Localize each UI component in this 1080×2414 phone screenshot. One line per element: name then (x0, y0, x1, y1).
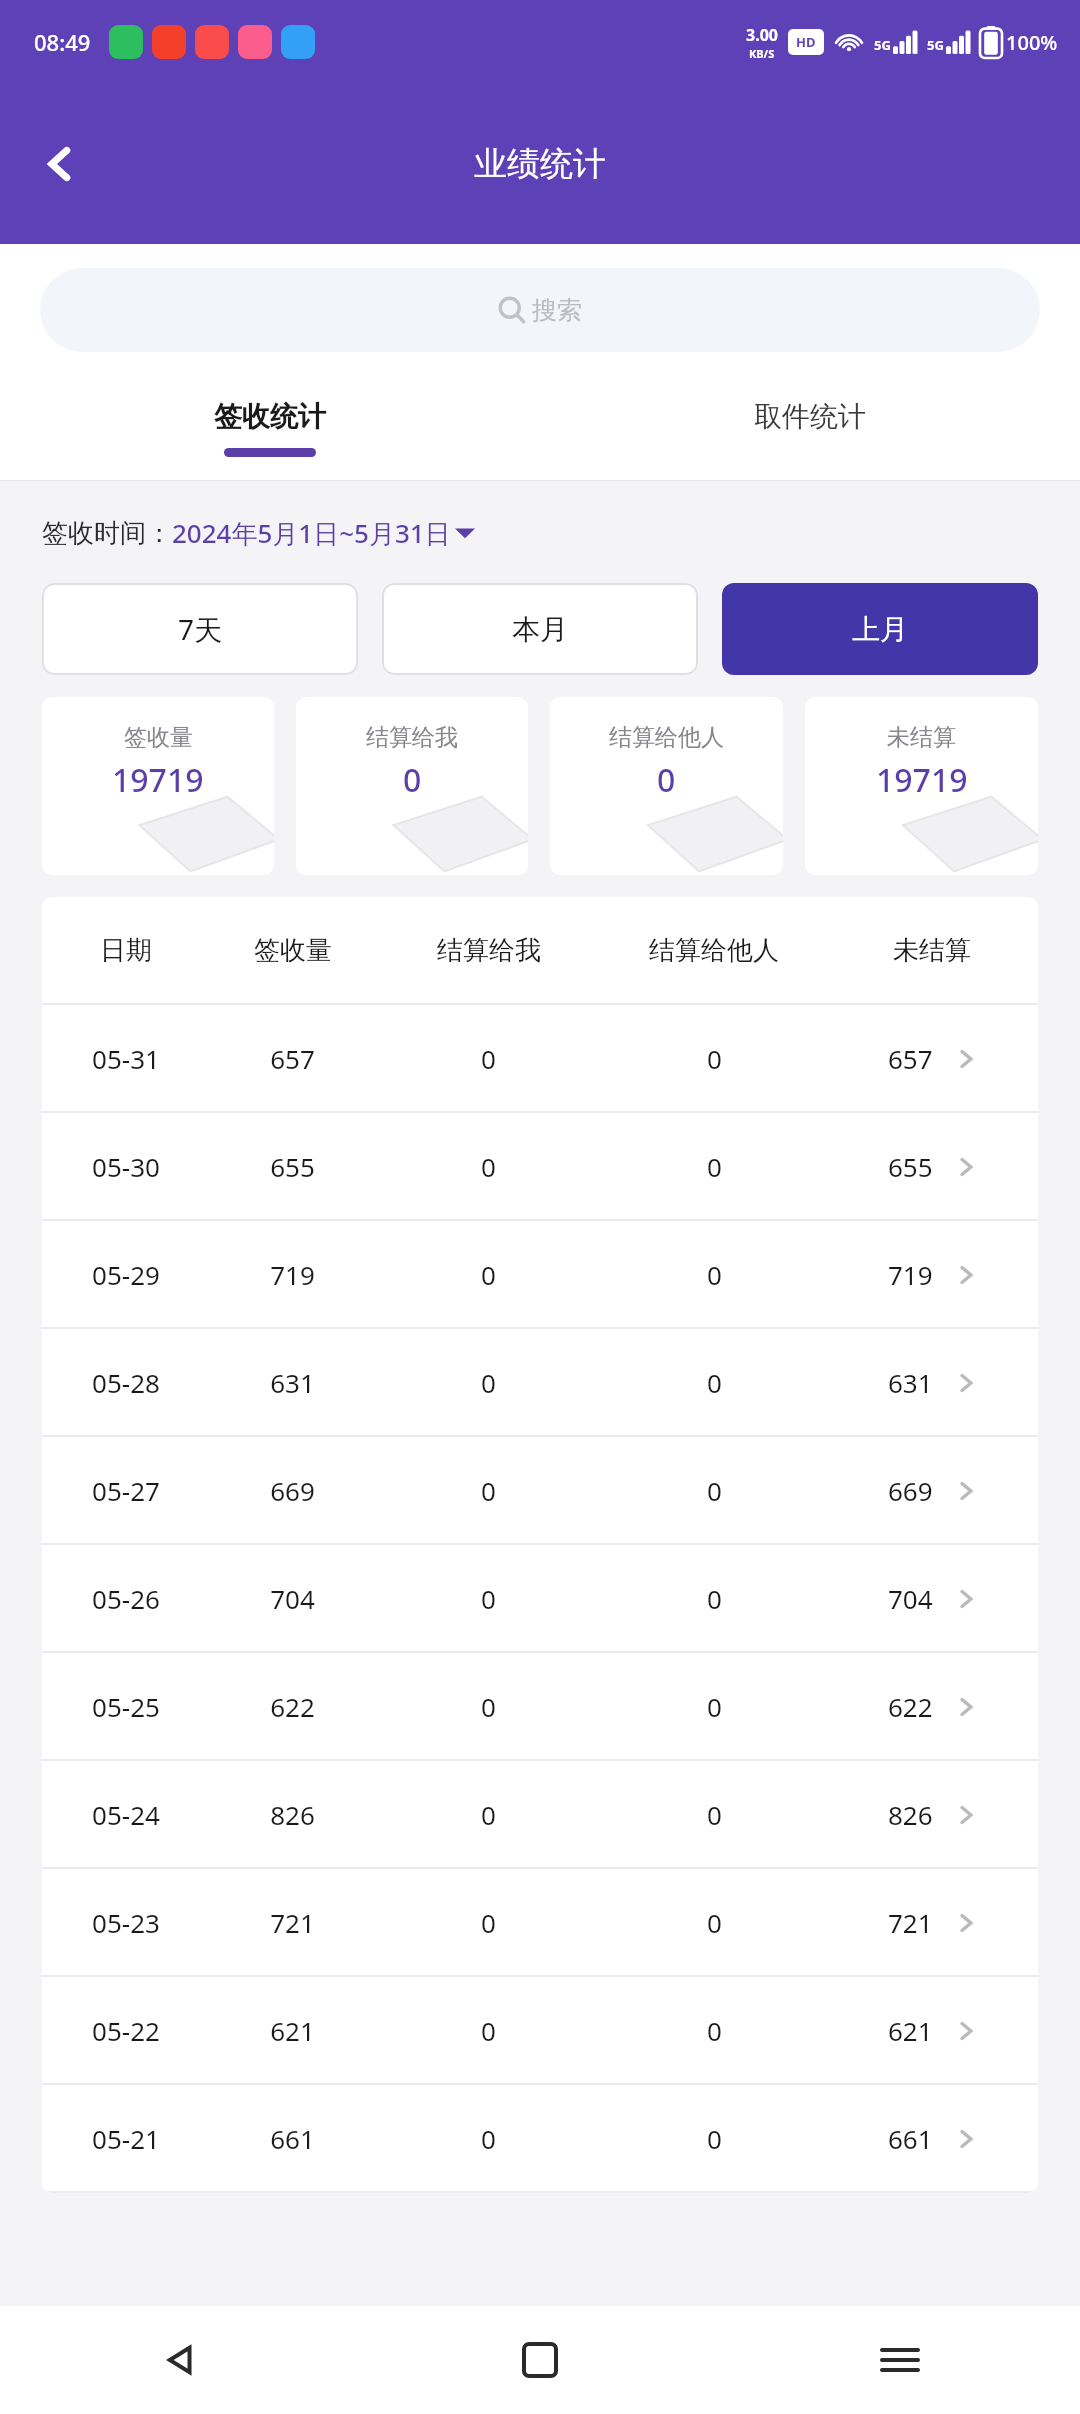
button[interactable]: Home (360, 2306, 720, 2414)
staticText: 本月 (512, 612, 568, 647)
button[interactable]: 未结算 (805, 697, 1038, 875)
staticText: 0 (707, 1581, 722, 1616)
staticText: 05-29 (92, 1257, 160, 1292)
staticText: 657 (270, 1041, 315, 1076)
staticText: KB/S (749, 46, 775, 61)
staticText: 704 (888, 1581, 933, 1616)
staticText: 日期 (100, 934, 152, 967)
staticText: 0 (481, 1473, 496, 1508)
staticText: 上月 (852, 612, 908, 647)
button[interactable]: 取件统计 (540, 376, 1080, 480)
staticText: 签收量 (254, 934, 332, 967)
staticText: 0 (481, 1689, 496, 1724)
staticText: 05-24 (92, 1797, 160, 1832)
staticText: 0 (707, 1041, 722, 1076)
button[interactable]: 05-24 (50, 1761, 1030, 1867)
button[interactable]: 结算给他人 (550, 697, 783, 875)
staticText: 100% (1006, 29, 1058, 56)
staticText: 0 (481, 1905, 496, 1940)
staticText: 0 (481, 1797, 496, 1832)
staticText: 结算给他人 (609, 723, 724, 752)
staticText: 19719 (112, 758, 204, 802)
staticText: 签收统计 (214, 399, 326, 434)
staticText: 3.00 (746, 24, 778, 46)
staticText: 未结算 (893, 934, 971, 967)
staticText: 取件统计 (754, 399, 866, 434)
button[interactable]: 签收时间： (42, 515, 1080, 551)
staticText: 622 (270, 1689, 315, 1724)
staticText: HD (796, 33, 816, 51)
staticText: 0 (481, 1581, 496, 1616)
button[interactable]: 05-30 (50, 1113, 1030, 1219)
staticText: 0 (707, 1365, 722, 1400)
staticText: 719 (888, 1257, 933, 1292)
staticText: 657 (888, 1041, 933, 1076)
staticText: 0 (481, 1149, 496, 1184)
staticText: 655 (270, 1149, 315, 1184)
button[interactable]: 05-25 (50, 1653, 1030, 1759)
button[interactable]: 05-22 (50, 1977, 1030, 2083)
staticText: 05-28 (92, 1365, 160, 1400)
staticText: 05-30 (92, 1149, 160, 1184)
button[interactable]: 05-28 (50, 1329, 1030, 1435)
staticText: 签收量 (124, 723, 193, 752)
button[interactable]: 签收量 (42, 697, 274, 875)
staticText: 0 (481, 2121, 496, 2156)
staticText: 结算给他人 (649, 934, 779, 967)
button[interactable]: 结算给我 (296, 697, 528, 875)
staticText: 719 (270, 1257, 315, 1292)
staticText: 621 (270, 2013, 315, 2048)
button[interactable]: 本月 (382, 583, 698, 675)
button[interactable]: 05-21 (50, 2085, 1030, 2191)
staticText: 669 (270, 1473, 315, 1508)
staticText: 0 (481, 2013, 496, 2048)
staticText: 搜索 (532, 295, 582, 326)
staticText: 7天 (178, 610, 223, 648)
staticText: 655 (888, 1149, 933, 1184)
staticText: 721 (888, 1905, 933, 1940)
staticText: 721 (270, 1905, 315, 1940)
staticText: 669 (888, 1473, 933, 1508)
staticText: 0 (707, 1689, 722, 1724)
staticText: 0 (707, 1149, 722, 1184)
staticText: 05-22 (92, 2013, 160, 2048)
button[interactable]: 上月 (722, 583, 1038, 675)
staticText: 0 (481, 1365, 496, 1400)
staticText: 631 (270, 1365, 315, 1400)
staticText: 结算给我 (366, 723, 458, 752)
staticText: 5G (874, 36, 891, 54)
button[interactable]: 签收统计 (0, 376, 540, 480)
staticText: 2024年5月1日~5月31日 (172, 515, 451, 551)
button[interactable]: 05-31 (50, 1005, 1030, 1111)
button[interactable]: Recent apps (720, 2306, 1080, 2414)
button[interactable]: 05-23 (50, 1869, 1030, 1975)
staticText: 0 (657, 758, 676, 802)
staticText: 622 (888, 1689, 933, 1724)
staticText: 0 (707, 1257, 722, 1292)
staticText: 业绩统计 (474, 143, 606, 185)
staticText: 0 (707, 1473, 722, 1508)
staticText: 661 (270, 2121, 315, 2156)
button[interactable]: 05-26 (50, 1545, 1030, 1651)
staticText: 05-31 (92, 1041, 160, 1076)
staticText: 签收时间： (42, 517, 172, 550)
button[interactable]: 05-27 (50, 1437, 1030, 1543)
staticText: 未结算 (887, 723, 956, 752)
button[interactable]: Back (0, 2306, 360, 2414)
staticText: 05-27 (92, 1473, 160, 1508)
staticText: 05-25 (92, 1689, 160, 1724)
staticText: 661 (888, 2121, 933, 2156)
button[interactable]: 05-29 (50, 1221, 1030, 1327)
staticText: 05-21 (92, 2121, 160, 2156)
staticText: 0 (481, 1041, 496, 1076)
button[interactable]: 搜索 (40, 268, 1040, 352)
staticText: 08:49 (34, 27, 91, 57)
staticText: 05-23 (92, 1905, 160, 1940)
button[interactable]: Back (22, 126, 98, 202)
staticText: 621 (888, 2013, 933, 2048)
staticText: 0 (707, 1797, 722, 1832)
button[interactable]: 7天 (42, 583, 358, 675)
staticText: 826 (270, 1797, 315, 1832)
staticText: 0 (707, 2121, 722, 2156)
staticText: 19719 (876, 758, 968, 802)
